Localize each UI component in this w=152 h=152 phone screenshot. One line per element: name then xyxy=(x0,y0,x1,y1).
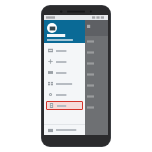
button[interactable] xyxy=(44,125,85,135)
button[interactable]: Account avatar xyxy=(47,23,57,33)
button[interactable] xyxy=(44,56,85,67)
button[interactable] xyxy=(44,78,85,89)
button[interactable] xyxy=(46,101,83,110)
button[interactable] xyxy=(44,89,85,100)
button[interactable] xyxy=(44,67,85,78)
button[interactable]: Account avatar xyxy=(44,20,85,43)
button[interactable] xyxy=(44,45,85,56)
